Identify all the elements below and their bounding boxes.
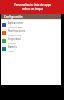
staticText: Gestionar apps bbox=[8, 26, 23, 29]
button[interactable]: Batería bbox=[1, 45, 61, 53]
staticText: Personaliza tu lista de apps solo a un t… bbox=[14, 3, 51, 11]
button[interactable]: Configuración bbox=[1, 14, 61, 19]
staticText: Bloqueo bbox=[8, 42, 16, 45]
staticText: Seguridad bbox=[8, 37, 21, 41]
button[interactable]: Seguridad bbox=[1, 37, 61, 45]
staticText: Ahorro bbox=[8, 50, 15, 53]
button[interactable]: Aplicaciones bbox=[1, 21, 61, 29]
button[interactable]: Notificaciones bbox=[1, 29, 61, 37]
staticText: Sonido y luces bbox=[8, 34, 22, 37]
staticText: Batería bbox=[8, 45, 17, 49]
staticText: Notificaciones bbox=[8, 29, 26, 33]
staticText: Configuración bbox=[4, 15, 23, 19]
staticText: Aplicaciones bbox=[8, 21, 24, 25]
